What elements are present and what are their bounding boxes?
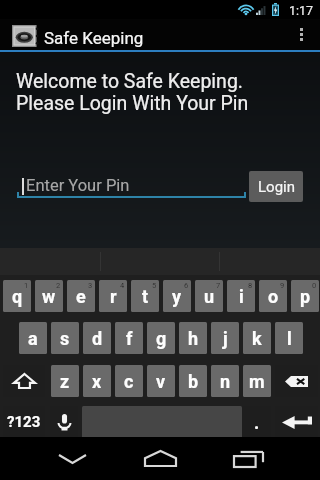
staticText: 5 [152,281,157,290]
staticText: . [254,412,260,433]
staticText: c [124,371,134,392]
staticText: k [252,328,262,349]
button[interactable]: Delete [275,365,318,397]
staticText: r [110,286,117,307]
staticText: Safe Keeping [44,28,144,48]
staticText: o [268,286,279,307]
staticText: Enter Your Pin [26,176,130,195]
button[interactable]: b [179,365,207,397]
staticText: w [42,286,56,307]
staticText: e [76,286,86,307]
button[interactable]: Login [249,171,303,202]
button[interactable]: t [131,280,159,312]
button[interactable]: j [211,322,239,354]
button[interactable]: n [211,365,239,397]
staticText: 2 [56,281,61,290]
button[interactable]: Enter Your Pin [17,168,246,198]
staticText: 1:17 [289,3,314,18]
staticText: 1 [24,281,29,290]
button[interactable]: z [51,365,79,397]
staticText: i [239,286,244,307]
button[interactable]: l [275,322,303,354]
staticText: n [220,371,231,392]
button[interactable]: h [179,322,207,354]
staticText: q [12,286,23,307]
button[interactable]: ?123 [3,406,45,438]
staticText: 8 [248,281,253,290]
button[interactable]: s [51,322,79,354]
staticText: d [92,328,103,349]
button[interactable]: u [195,280,223,312]
staticText: x [92,371,102,392]
staticText: 3 [88,281,93,290]
staticText: y [172,286,182,307]
button[interactable]: y [163,280,191,312]
staticText: j [223,328,228,349]
button[interactable]: Hide keyboard [42,437,102,480]
staticText: Login [258,178,295,196]
staticText: a [28,328,38,349]
button[interactable]: . [242,406,271,438]
staticText: z [60,371,70,392]
staticText: ?123 [7,413,41,431]
button[interactable]: m [243,365,271,397]
button[interactable]: k [243,322,271,354]
staticText: Welcome to Safe Keeping. Please Login Wi… [16,70,249,115]
staticText: v [156,371,166,392]
staticText: u [204,286,215,307]
staticText: g [156,328,167,349]
button[interactable]: x [83,365,111,397]
button[interactable]: f [115,322,143,354]
button[interactable]: a [19,322,47,354]
button[interactable]: Voice input [50,406,78,438]
button[interactable]: g [147,322,175,354]
button[interactable]: r [99,280,127,312]
button[interactable]: Recent apps [219,437,279,480]
staticText: s [60,328,70,349]
button[interactable]: i [227,280,255,312]
button[interactable]: p [291,280,319,312]
button[interactable]: v [147,365,175,397]
staticText: t [142,286,149,307]
staticText: p [300,286,311,307]
staticText: 9 [280,281,285,290]
button[interactable]: o [259,280,287,312]
staticText: l [287,328,292,349]
button[interactable]: d [83,322,111,354]
button[interactable]: Enter [275,406,318,438]
button[interactable]: More options [286,19,316,50]
button[interactable]: c [115,365,143,397]
staticText: h [188,328,199,349]
staticText: 6 [184,281,189,290]
button[interactable]: Space [82,406,242,438]
staticText: 4 [120,281,125,290]
staticText: f [126,328,133,349]
button[interactable]: q [3,280,31,312]
staticText: 7 [216,281,221,290]
button[interactable]: Shift [3,365,45,397]
staticText: b [188,371,199,392]
button[interactable]: e [67,280,95,312]
button[interactable]: w [35,280,63,312]
button[interactable]: Home [130,437,190,480]
staticText: 0 [312,281,317,290]
staticText: m [249,371,265,392]
